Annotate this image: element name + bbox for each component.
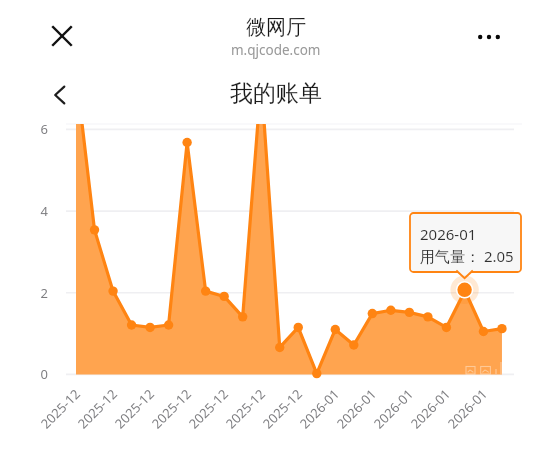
staticText: 2026-01 xyxy=(330,385,380,434)
staticText: 2026-01 xyxy=(441,385,491,434)
staticText: 6 xyxy=(22,120,48,138)
staticText: 2026-01 xyxy=(404,385,454,434)
button[interactable]: More options xyxy=(471,19,507,55)
staticText: 2 xyxy=(22,284,48,302)
staticText: 2025-12 xyxy=(145,385,195,434)
staticText: 微网厅 xyxy=(246,15,306,40)
button[interactable]: Close xyxy=(43,17,81,55)
staticText: 4 xyxy=(22,202,48,220)
staticText: 2026-01 xyxy=(293,385,343,434)
staticText: 0 xyxy=(22,365,48,383)
staticText: 2025-12 xyxy=(108,385,158,434)
staticText: 2025-12 xyxy=(256,385,306,434)
staticText: m.qjcode.com xyxy=(231,41,321,59)
button[interactable]: Back xyxy=(43,78,77,112)
staticText: 我的账单 xyxy=(230,79,322,108)
staticText: 2026-01 xyxy=(420,224,477,244)
staticText: 2025-12 xyxy=(182,385,232,434)
staticText: 2025-12 xyxy=(71,385,121,434)
staticText: 2025-12 xyxy=(34,385,84,434)
staticText: 2026-01 xyxy=(367,385,417,434)
staticText: 用气量： 2.05 xyxy=(420,246,514,266)
staticText: 2025-12 xyxy=(219,385,269,434)
